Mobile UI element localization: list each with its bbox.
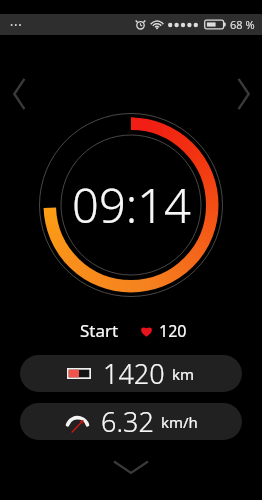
button[interactable]: Previous bbox=[3, 70, 35, 118]
button[interactable]: 1420 bbox=[20, 355, 242, 392]
staticText: 1420 bbox=[103, 355, 165, 392]
staticText: Start bbox=[80, 319, 119, 342]
button[interactable]: Show more bbox=[103, 454, 159, 480]
staticText: 68 % bbox=[230, 17, 255, 32]
staticText: 6.32 bbox=[101, 403, 154, 440]
staticText: km bbox=[172, 364, 195, 384]
button[interactable]: Start bbox=[75, 317, 124, 344]
staticText: km/h bbox=[161, 412, 198, 432]
button[interactable]: 6.32 bbox=[20, 403, 242, 440]
staticText: 09:14 bbox=[72, 173, 191, 237]
button[interactable]: Next bbox=[227, 70, 259, 118]
staticText: 120 bbox=[159, 320, 187, 342]
